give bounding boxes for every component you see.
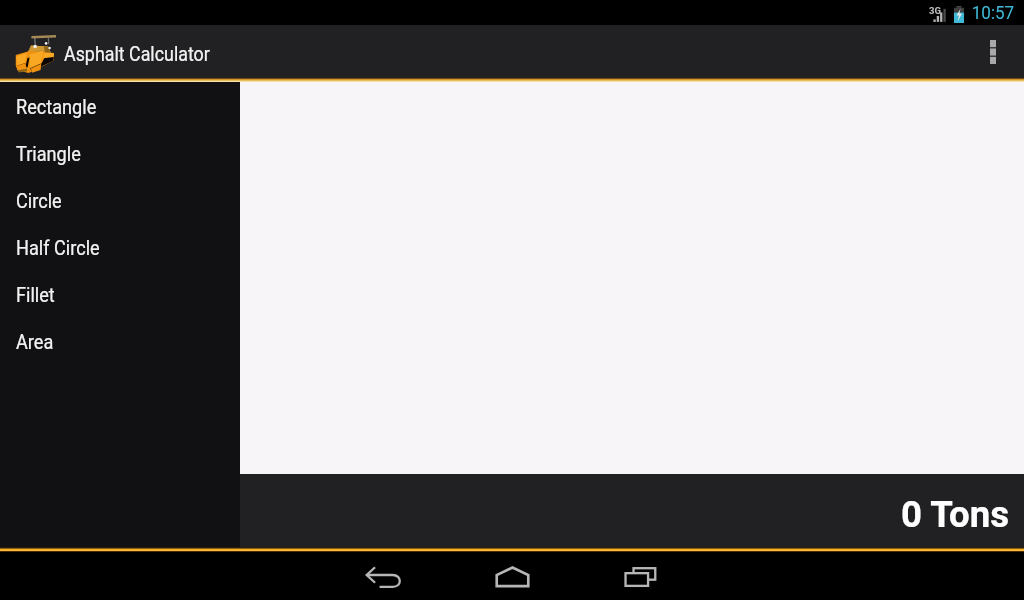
button[interactable]: Circle xyxy=(0,178,240,225)
staticText: Half Circle xyxy=(16,237,101,260)
staticText: 10:57 xyxy=(972,2,1015,24)
button[interactable]: Rectangle xyxy=(0,84,240,131)
staticText: Rectangle xyxy=(16,96,97,119)
staticText: Area xyxy=(16,331,54,354)
button[interactable]: Back xyxy=(336,555,432,600)
button[interactable]: Home xyxy=(464,555,560,600)
staticText: 0 Tons xyxy=(901,493,1010,536)
button[interactable]: Fillet xyxy=(0,272,240,319)
staticText: Circle xyxy=(16,190,62,213)
staticText: 3G xyxy=(929,5,941,16)
button[interactable]: Recent apps xyxy=(592,555,688,600)
button[interactable]: Half Circle xyxy=(0,225,240,272)
button[interactable]: More options xyxy=(962,25,1024,78)
button[interactable]: Area xyxy=(0,319,240,366)
staticText: Triangle xyxy=(16,143,81,166)
button[interactable]: Triangle xyxy=(0,131,240,178)
staticText: Asphalt Calculator xyxy=(64,42,210,67)
staticText: Fillet xyxy=(16,284,55,307)
